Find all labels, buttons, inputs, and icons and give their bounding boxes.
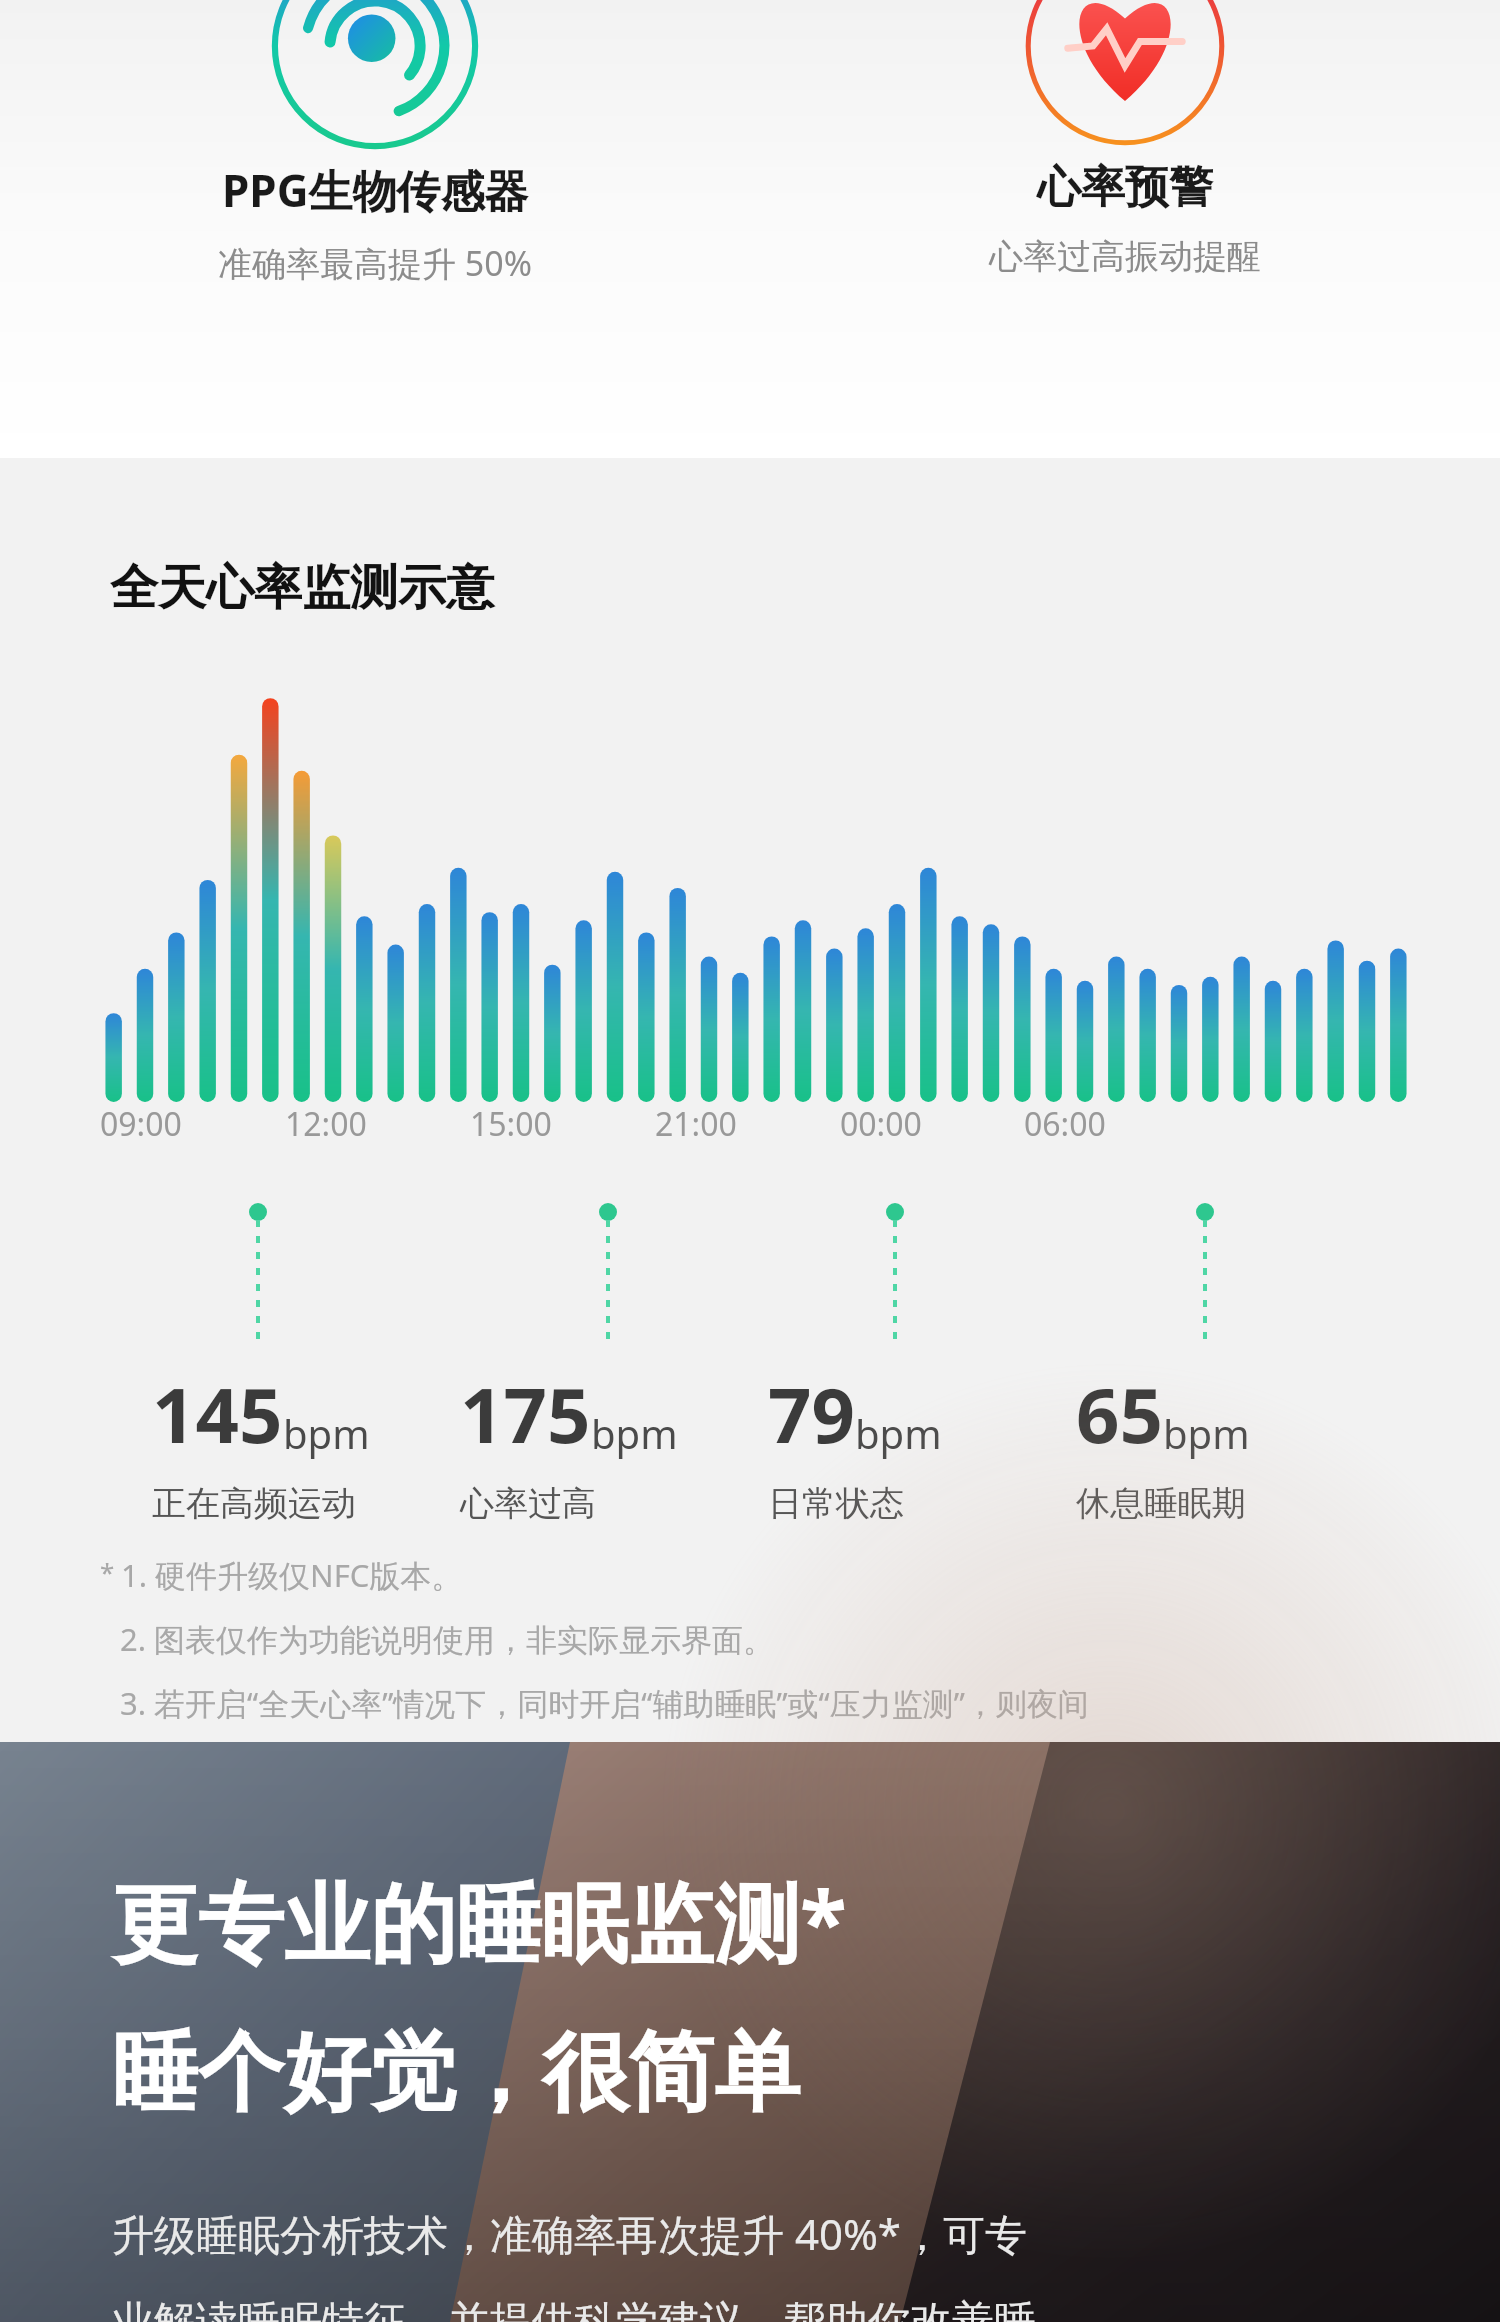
staticText: 00:00 <box>840 1102 922 1146</box>
staticText: 79 <box>768 1362 855 1466</box>
staticText: bpm <box>855 1406 942 1460</box>
button[interactable]: 175 <box>460 1362 678 1525</box>
staticText: 145 <box>152 1362 283 1466</box>
staticText: 心率预警 <box>1037 160 1213 215</box>
other: Heart rate alert <box>1015 0 1235 156</box>
staticText: bpm <box>591 1406 678 1460</box>
staticText: 休息睡眠期 <box>1076 1482 1246 1525</box>
staticText: bpm <box>1163 1406 1250 1460</box>
button[interactable]: 79 <box>768 1362 942 1525</box>
staticText: 正在高频运动 <box>152 1482 356 1525</box>
staticText: 睡个好觉，很简单 <box>112 2019 800 2127</box>
staticText: 09:00 <box>100 1102 182 1146</box>
button[interactable]: 65 <box>1076 1362 1250 1525</box>
staticText: 心率过高 <box>460 1482 596 1525</box>
staticText: PPG生物传感器 <box>222 160 529 220</box>
staticText: 21:00 <box>655 1102 737 1146</box>
staticText: 175 <box>460 1362 591 1466</box>
staticText: bpm <box>283 1406 370 1460</box>
staticText: 15:00 <box>470 1102 552 1146</box>
staticText: 3. 若开启“全天心率”情况下，同时开启“辅助睡眠”或“压力监测”，则夜间 <box>120 1682 1089 1724</box>
staticText: 业解读睡眠特征，并提供科学建议，帮助你改善睡 <box>112 2296 1036 2322</box>
staticText: 心率过高振动提醒 <box>989 235 1261 278</box>
staticText: 2. 图表仅作为功能说明使用，非实际显示界面。 <box>120 1618 775 1660</box>
staticText: 06:00 <box>1024 1102 1106 1146</box>
button[interactable]: 145 <box>152 1362 370 1525</box>
staticText: 12:00 <box>285 1102 367 1146</box>
other: PPG biosensor <box>265 0 485 156</box>
button[interactable]: PPG biosensor <box>0 0 750 458</box>
staticText: 升级睡眠分析技术，准确率再次提升 40%*，可专 <box>112 2205 1028 2262</box>
staticText: * <box>100 1554 115 1589</box>
button[interactable]: Heart rate alert <box>750 0 1500 458</box>
staticText: 日常状态 <box>768 1482 904 1525</box>
staticText: 全天心率监测示意 <box>110 558 494 618</box>
staticText: 更专业的睡眠监测* <box>112 1862 847 1979</box>
staticText: 准确率最高提升 50% <box>218 240 532 286</box>
staticText: 1. 硬件升级仅NFC版本。 <box>121 1554 463 1596</box>
staticText: 65 <box>1076 1362 1163 1466</box>
